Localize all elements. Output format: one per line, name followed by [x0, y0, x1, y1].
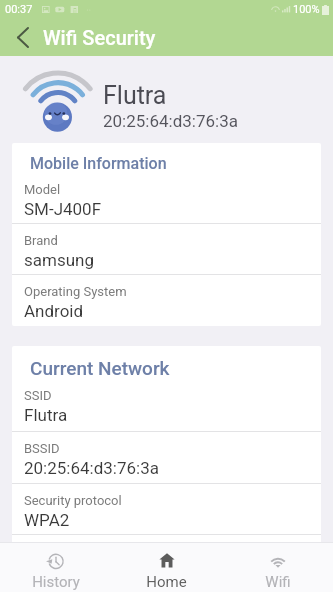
button[interactable]: Home: [111, 543, 222, 592]
staticText: Flutra: [103, 81, 167, 110]
button[interactable]: Back: [0, 19, 46, 56]
staticText: Mobile Information: [30, 154, 167, 173]
staticText: Frequency: [24, 544, 84, 559]
staticText: 100%: [293, 3, 320, 16]
staticText: BSSID: [24, 441, 60, 456]
staticText: Security protocol: [24, 493, 122, 508]
button[interactable]: Brand: [12, 224, 321, 274]
staticText: 20:25:64:d3:76:3a: [24, 458, 159, 478]
staticText: Android: [24, 301, 84, 321]
staticText: Model: [24, 182, 61, 197]
button[interactable]: Model: [12, 173, 321, 223]
staticText: Wifi Security: [43, 26, 156, 49]
staticText: 00:37: [5, 3, 33, 16]
button[interactable]: Wifi: [222, 543, 333, 592]
button[interactable]: BSSID: [12, 432, 321, 483]
staticText: History: [32, 573, 80, 591]
staticText: SM-J400F: [24, 199, 102, 219]
staticText: SSID: [24, 388, 52, 403]
button[interactable]: Frequency: [12, 535, 321, 585]
button[interactable]: History: [0, 543, 111, 592]
staticText: WPA2: [24, 510, 70, 530]
staticText: 2.4 GHz: [24, 561, 84, 581]
staticText: Wifi: [265, 573, 291, 591]
staticText: Home: [146, 573, 187, 591]
button[interactable]: Operating System: [12, 275, 321, 326]
staticText: Operating System: [24, 284, 127, 299]
staticText: Current Network: [30, 357, 170, 379]
button[interactable]: Security protocol: [12, 484, 321, 534]
staticText: 20:25:64:d3:76:3a: [103, 111, 238, 131]
staticText: samsung: [24, 250, 95, 270]
staticText: Brand: [24, 233, 58, 248]
staticText: Flutra: [24, 405, 68, 425]
button[interactable]: SSID: [12, 379, 321, 431]
